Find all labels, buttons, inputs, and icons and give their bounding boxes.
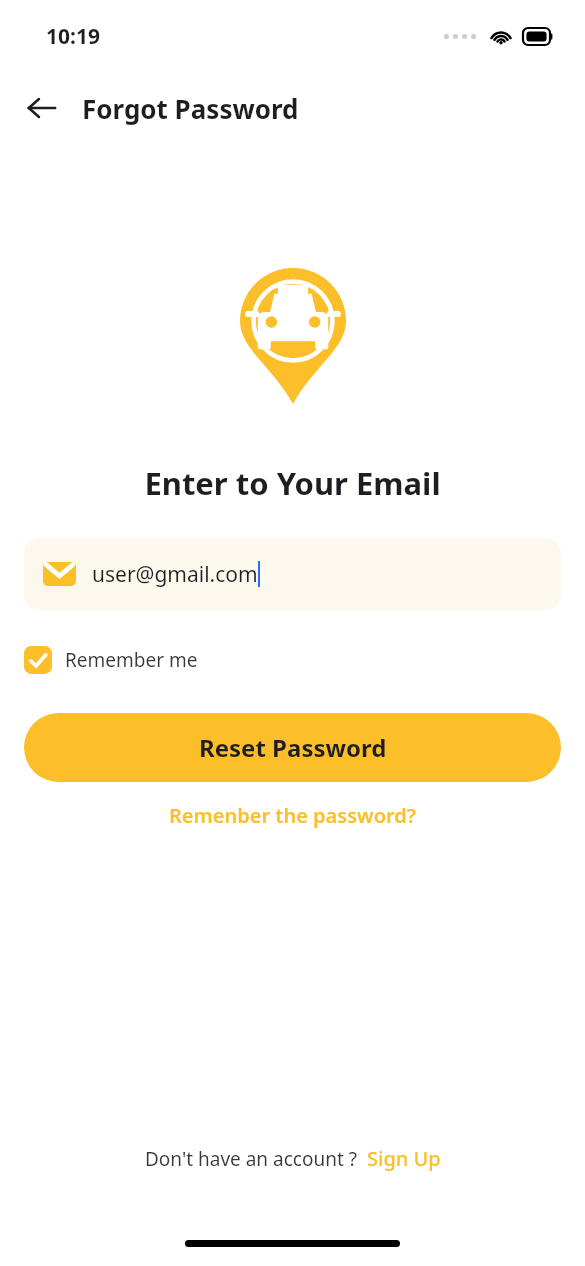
button[interactable]: Remenber the password? xyxy=(169,802,416,829)
staticText: Remember me xyxy=(65,647,198,673)
staticText: Remenber the password? xyxy=(169,802,416,829)
staticText: Sign Up xyxy=(367,1145,441,1172)
staticText: Don't have an account ? xyxy=(145,1146,357,1172)
button[interactable]: Remember me xyxy=(24,646,198,674)
staticText: Reset Password xyxy=(199,731,387,764)
button[interactable]: Reset Password xyxy=(24,713,561,782)
button[interactable]: Sign Up xyxy=(367,1145,441,1172)
button[interactable]: Back xyxy=(18,84,66,132)
staticText: 10:19 xyxy=(46,22,100,51)
staticText: user@gmail.com xyxy=(92,560,258,589)
staticText: Enter to Your Email xyxy=(0,462,585,504)
staticText: Forgot Password xyxy=(82,91,299,126)
button[interactable]: user@gmail.com xyxy=(24,538,561,610)
